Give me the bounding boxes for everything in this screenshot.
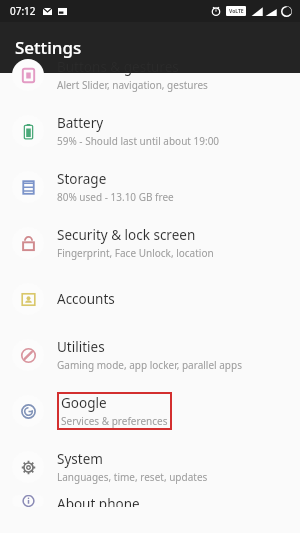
staticText: Buttons & gestures	[57, 58, 179, 76]
button[interactable]: Utilities	[0, 327, 300, 383]
button[interactable]: System	[0, 439, 300, 495]
staticText: System	[57, 450, 103, 468]
button[interactable]: Google	[0, 383, 300, 439]
button[interactable]: Storage	[0, 159, 300, 215]
staticText: Settings	[15, 36, 82, 59]
staticText: Accounts	[57, 290, 115, 308]
staticText: Google	[61, 394, 107, 412]
staticText: Services & preferences	[61, 414, 168, 428]
staticText: Languages, time, reset, updates	[57, 470, 208, 484]
staticText: Alert Slider, navigation, gestures	[57, 78, 208, 92]
staticText: 59% - Should last until about 19:00	[57, 134, 220, 148]
button[interactable]: Accounts	[0, 271, 300, 327]
button[interactable]: Security & lock screen	[0, 215, 300, 271]
staticText: 80% used - 13.10 GB free	[57, 190, 174, 204]
staticText: Gaming mode, app locker, parallel apps	[57, 358, 242, 372]
button[interactable]: About phone	[0, 495, 300, 507]
staticText: About phone	[57, 495, 140, 507]
staticText: Utilities	[57, 338, 105, 356]
staticText: 07:12	[10, 4, 36, 18]
staticText: Fingerprint, Face Unlock, location	[57, 246, 214, 260]
staticText: Storage	[57, 170, 107, 188]
button[interactable]: Battery	[0, 103, 300, 159]
staticText: Battery	[57, 114, 104, 132]
staticText: Security & lock screen	[57, 226, 196, 244]
button[interactable]: Buttons & gestures	[0, 47, 300, 103]
staticText: VoLTE	[229, 8, 244, 15]
